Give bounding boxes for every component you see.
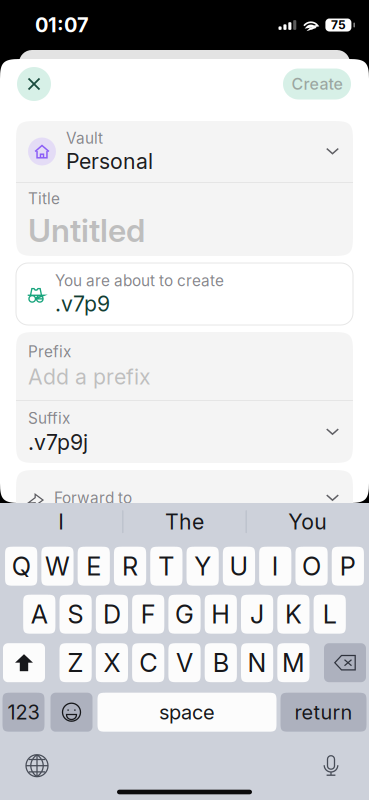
staticText: U — [229, 551, 248, 582]
staticText: A — [31, 599, 48, 630]
staticText: Forward to — [54, 489, 132, 507]
button[interactable]: You are about to create — [16, 263, 353, 325]
staticText: Personal — [66, 148, 153, 174]
staticText: J — [250, 599, 264, 630]
button[interactable]: H — [205, 595, 237, 634]
staticText: Prefix — [28, 342, 71, 361]
staticText: O — [302, 551, 321, 582]
staticText: R — [122, 551, 138, 582]
button[interactable]: Shift — [3, 643, 45, 682]
button[interactable]: Y — [187, 547, 219, 586]
button[interactable]: space — [97, 693, 276, 732]
button[interactable]: S — [59, 595, 92, 634]
button[interactable]: Title — [16, 183, 353, 256]
button[interactable]: Suffix — [16, 401, 353, 463]
button[interactable]: Emoji — [50, 693, 92, 732]
staticText: P — [340, 551, 356, 582]
staticText: Vault — [66, 129, 103, 147]
button[interactable]: Next keyboard — [17, 750, 57, 782]
button[interactable]: You — [247, 501, 369, 543]
staticText: Z — [68, 647, 84, 678]
button[interactable]: Dictate — [311, 750, 351, 782]
staticText: return — [294, 700, 352, 724]
button[interactable]: P — [332, 547, 364, 586]
button[interactable]: L — [314, 595, 346, 634]
staticText: S — [68, 599, 84, 630]
button[interactable]: W — [41, 547, 74, 586]
staticText: F — [141, 599, 156, 630]
staticText: Title — [28, 189, 60, 208]
button[interactable]: O — [295, 547, 328, 586]
staticText: Suffix — [28, 409, 70, 427]
button[interactable]: D — [96, 595, 128, 634]
staticText: Q — [12, 551, 31, 582]
staticText: I — [58, 509, 64, 535]
button[interactable]: N — [241, 643, 273, 682]
staticText: T — [158, 551, 174, 582]
staticText: Create — [291, 74, 342, 94]
staticText: You are about to create — [55, 271, 224, 290]
button[interactable]: Forward to — [16, 470, 353, 526]
staticText: N — [248, 647, 267, 678]
staticText: .v7p9 — [55, 291, 110, 317]
staticText: Y — [194, 551, 211, 582]
staticText: D — [103, 599, 121, 630]
button[interactable]: A — [23, 595, 55, 634]
button[interactable]: Vault — [16, 121, 353, 182]
button[interactable]: M — [277, 643, 309, 682]
staticText: space — [159, 700, 215, 724]
staticText: You — [288, 509, 327, 535]
staticText: Untitled — [28, 211, 145, 250]
staticText: V — [176, 647, 193, 678]
staticText: M — [282, 647, 305, 678]
button[interactable]: Z — [59, 643, 92, 682]
button[interactable]: I — [0, 501, 122, 543]
button[interactable]: C — [132, 643, 164, 682]
button[interactable]: T — [150, 547, 182, 586]
button[interactable]: X — [96, 643, 128, 682]
staticText: L — [323, 599, 337, 630]
staticText: X — [103, 647, 120, 678]
button[interactable]: I — [259, 547, 291, 586]
button[interactable]: B — [205, 643, 237, 682]
button[interactable]: E — [78, 547, 110, 586]
staticText: C — [139, 647, 157, 678]
button[interactable]: U — [223, 547, 255, 586]
staticText: B — [213, 647, 229, 678]
button[interactable]: The — [123, 501, 246, 543]
button[interactable]: return — [280, 693, 366, 732]
staticText: H — [211, 599, 230, 630]
staticText: G — [175, 599, 194, 630]
button[interactable]: V — [168, 643, 201, 682]
staticText: 75 — [331, 18, 346, 32]
staticText: 123 — [7, 700, 39, 724]
button[interactable]: J — [241, 595, 273, 634]
staticText: Add a prefix — [28, 364, 151, 390]
button[interactable]: G — [168, 595, 201, 634]
staticText: 01:07 — [35, 13, 89, 37]
staticText: K — [285, 599, 302, 630]
button[interactable]: Close — [17, 67, 51, 101]
button[interactable]: R — [114, 547, 146, 586]
button[interactable]: Create — [283, 68, 351, 99]
staticText: .v7p9j — [28, 429, 88, 455]
button[interactable]: Q — [5, 547, 37, 586]
button[interactable]: Delete — [324, 643, 366, 682]
staticText: W — [45, 551, 70, 582]
button[interactable]: Prefix — [16, 332, 353, 400]
staticText: The — [165, 509, 204, 535]
staticText: E — [86, 551, 101, 582]
staticText: I — [272, 551, 279, 582]
button[interactable]: K — [277, 595, 309, 634]
button[interactable]: F — [132, 595, 164, 634]
button[interactable]: 123 — [2, 693, 44, 732]
